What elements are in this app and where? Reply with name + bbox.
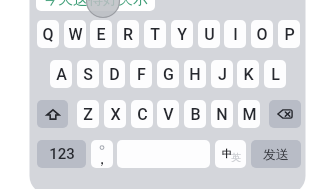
button[interactable]: A bbox=[50, 60, 72, 88]
button[interactable]: C bbox=[131, 100, 153, 128]
button[interactable]: B bbox=[184, 100, 206, 128]
staticText: U bbox=[204, 25, 215, 44]
button[interactable]: Comma bbox=[91, 140, 113, 168]
staticText: T bbox=[150, 25, 160, 44]
button[interactable]: O bbox=[251, 20, 273, 48]
button[interactable]: U bbox=[198, 20, 220, 48]
other: Selection handle bbox=[85, 0, 121, 19]
button[interactable]: Backspace bbox=[269, 100, 301, 128]
button[interactable]: I bbox=[224, 20, 246, 48]
staticText: Y bbox=[177, 25, 187, 44]
staticText: A bbox=[56, 65, 67, 84]
staticText: M bbox=[242, 105, 257, 124]
staticText: C bbox=[137, 105, 148, 124]
button[interactable]: Z bbox=[77, 100, 99, 128]
staticText: B bbox=[190, 105, 201, 124]
staticText: N bbox=[216, 105, 228, 124]
staticText: J bbox=[218, 65, 227, 84]
button[interactable]: Space bbox=[117, 140, 210, 168]
button[interactable]: M bbox=[238, 100, 260, 128]
button[interactable]: Y bbox=[171, 20, 193, 48]
button[interactable]: S bbox=[77, 60, 99, 88]
button[interactable]: P bbox=[278, 20, 300, 48]
staticText: Q bbox=[42, 25, 54, 44]
staticText: 今天这得好哭示 bbox=[43, 0, 148, 9]
button[interactable]: Switch language bbox=[215, 140, 246, 168]
staticText: E bbox=[96, 25, 106, 44]
staticText: H bbox=[189, 65, 201, 84]
button[interactable]: 123 bbox=[37, 140, 86, 168]
button[interactable]: T bbox=[144, 20, 166, 48]
staticText: O bbox=[256, 25, 268, 44]
staticText: 123 bbox=[49, 145, 75, 163]
button[interactable]: K bbox=[237, 60, 259, 88]
staticText: L bbox=[271, 65, 280, 84]
staticText: S bbox=[83, 65, 93, 84]
button[interactable]: R bbox=[117, 20, 139, 48]
button[interactable]: W bbox=[64, 20, 86, 48]
staticText: K bbox=[243, 65, 254, 84]
staticText: ， bbox=[94, 149, 110, 168]
staticText: I bbox=[233, 25, 238, 44]
button[interactable]: Shift bbox=[37, 100, 68, 128]
button[interactable]: X bbox=[104, 100, 126, 128]
button[interactable]: H bbox=[184, 60, 206, 88]
staticText: F bbox=[137, 65, 146, 84]
staticText: P bbox=[284, 25, 295, 44]
button[interactable]: L bbox=[264, 60, 286, 88]
button[interactable]: Q bbox=[37, 20, 59, 48]
staticText: 英 bbox=[231, 151, 241, 164]
staticText: W bbox=[68, 25, 83, 44]
button[interactable]: J bbox=[211, 60, 233, 88]
button[interactable]: G bbox=[157, 60, 179, 88]
staticText: 中 bbox=[222, 147, 232, 160]
staticText: R bbox=[123, 25, 133, 44]
staticText: D bbox=[109, 65, 120, 84]
staticText: X bbox=[110, 105, 121, 124]
button[interactable]: N bbox=[211, 100, 233, 128]
button[interactable]: V bbox=[157, 100, 179, 128]
staticText: 发送 bbox=[263, 146, 289, 162]
button[interactable]: D bbox=[103, 60, 125, 88]
staticText: G bbox=[163, 65, 174, 84]
button[interactable]: 发送 bbox=[251, 140, 301, 168]
button[interactable]: E bbox=[90, 20, 112, 48]
staticText: Z bbox=[83, 105, 93, 124]
staticText: V bbox=[163, 105, 174, 124]
button[interactable]: F bbox=[130, 60, 152, 88]
